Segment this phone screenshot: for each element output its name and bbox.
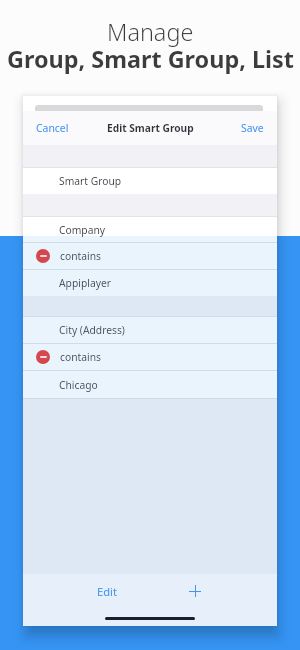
button[interactable]: Cancel: [36, 121, 69, 135]
button[interactable]: Edit: [83, 580, 131, 602]
staticText: City (Address): [59, 323, 125, 337]
staticText: contains: [60, 249, 101, 263]
staticText: Appiplayer: [59, 276, 111, 290]
staticText: Chicago: [59, 378, 98, 392]
staticText: Manage: [107, 16, 194, 48]
staticText: Save: [241, 121, 264, 135]
staticText: contains: [60, 350, 101, 364]
staticText: Cancel: [36, 121, 69, 135]
button[interactable]: Remove contains: [36, 350, 50, 364]
staticText: Group, Smart Group, List: [7, 43, 294, 75]
button[interactable]: Add condition: [171, 580, 219, 602]
button[interactable]: Save: [241, 121, 264, 135]
button[interactable]: Remove contains: [36, 249, 50, 263]
staticText: Company: [59, 223, 106, 237]
staticText: Smart Group: [59, 174, 122, 188]
staticText: Edit Smart Group: [107, 121, 194, 135]
staticText: Edit: [97, 584, 118, 599]
